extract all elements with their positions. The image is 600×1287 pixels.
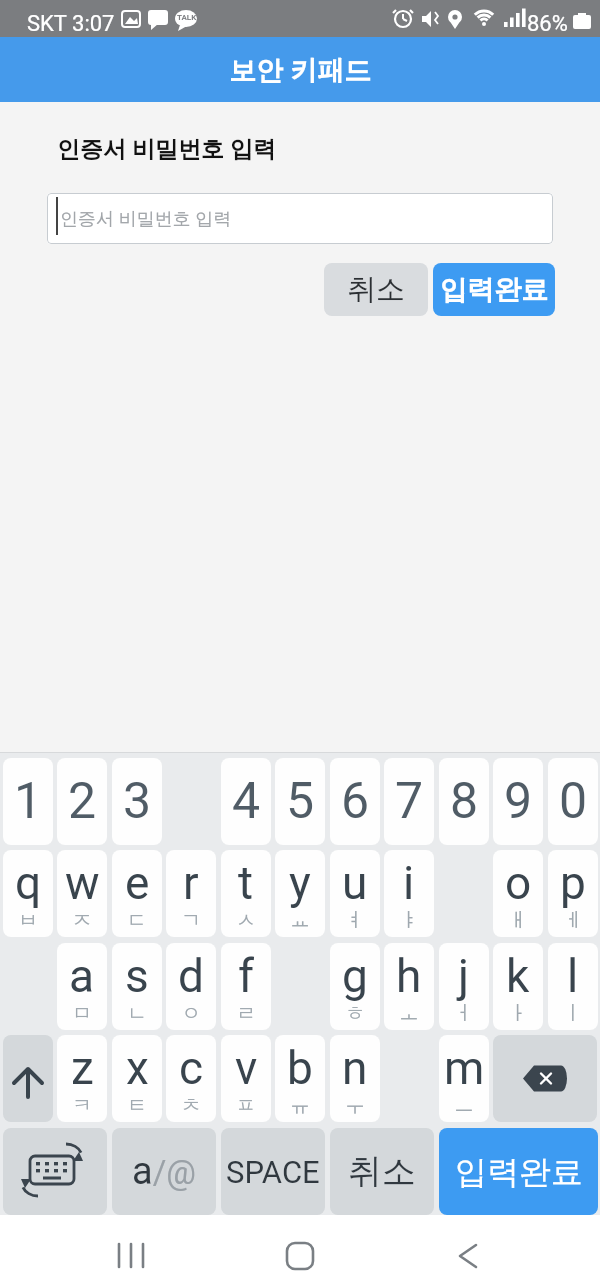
staticText: 입력완료 <box>440 273 548 307</box>
staticText: r <box>183 856 199 910</box>
button[interactable]: 7 <box>384 758 434 845</box>
button[interactable]: r <box>166 850 216 937</box>
button[interactable]: 취소 <box>324 263 428 316</box>
staticText: b <box>287 1041 313 1095</box>
staticText: 인증서 비밀번호 입력 <box>57 132 276 163</box>
button[interactable]: v <box>221 1035 271 1122</box>
button[interactable]: 입력완료 <box>433 263 555 316</box>
staticText: TALK <box>177 13 197 22</box>
button[interactable]: 3 <box>112 758 162 845</box>
button[interactable]: y <box>275 850 325 937</box>
staticText: m <box>444 1041 485 1095</box>
staticText: ㅊ <box>181 1093 201 1118</box>
staticText: ㅈ <box>72 908 92 933</box>
staticText: x <box>126 1041 149 1095</box>
staticText: ㄱ <box>181 908 201 933</box>
staticText: 인증서 비밀번호 입력 <box>60 206 232 231</box>
staticText: d <box>178 949 204 1003</box>
button[interactable]: b <box>275 1035 325 1122</box>
staticText: w <box>65 856 100 910</box>
staticText: ㅛ <box>290 908 310 933</box>
staticText: ㅁ <box>72 1001 92 1026</box>
button[interactable]: a <box>57 943 107 1030</box>
button[interactable]: o <box>493 850 543 937</box>
button[interactable]: 취소 <box>330 1128 434 1215</box>
button[interactable]: m <box>439 1035 489 1122</box>
button[interactable]: SPACE <box>221 1128 325 1215</box>
staticText: u <box>342 856 368 910</box>
staticText: q <box>15 856 42 910</box>
button[interactable]: x <box>112 1035 162 1122</box>
staticText: 6 <box>341 772 370 831</box>
staticText: ㅔ <box>563 908 583 933</box>
button[interactable]: 인증서 비밀번호 입력 <box>47 193 553 244</box>
button[interactable] <box>200 1215 400 1287</box>
button[interactable] <box>493 1035 597 1122</box>
staticText: l <box>567 949 579 1003</box>
staticText: ㅜ <box>345 1093 365 1118</box>
staticText: c <box>179 1041 204 1095</box>
staticText: 1 <box>14 772 43 831</box>
staticText: o <box>505 856 532 910</box>
button[interactable]: l <box>548 943 598 1030</box>
button[interactable]: 4 <box>221 758 271 845</box>
button[interactable]: 2 <box>57 758 107 845</box>
button[interactable]: n <box>330 1035 380 1122</box>
staticText: ㅂ <box>18 908 38 933</box>
button[interactable]: i <box>384 850 434 937</box>
staticText: ㅕ <box>345 908 365 933</box>
staticText: 0 <box>559 772 588 831</box>
staticText: k <box>506 949 530 1003</box>
button[interactable]: e <box>112 850 162 937</box>
staticText: 4 <box>232 772 261 831</box>
button[interactable]: 8 <box>439 758 489 845</box>
button[interactable]: j <box>439 943 489 1030</box>
staticText: 보안 키패드 <box>229 51 372 88</box>
button[interactable]: p <box>548 850 598 937</box>
staticText: z <box>71 1041 94 1095</box>
staticText: ㅌ <box>127 1093 147 1118</box>
button[interactable]: w <box>57 850 107 937</box>
button[interactable]: d <box>166 943 216 1030</box>
button[interactable]: k <box>493 943 543 1030</box>
staticText: 5 <box>286 772 315 831</box>
staticText: ㅗ <box>399 1001 419 1026</box>
button[interactable]: h <box>384 943 434 1030</box>
button[interactable]: a/@ <box>112 1128 216 1215</box>
staticText: 취소 <box>347 271 405 308</box>
button[interactable]: t <box>221 850 271 937</box>
button[interactable]: u <box>330 850 380 937</box>
button[interactable] <box>400 1215 600 1287</box>
staticText: 86% <box>527 11 568 37</box>
staticText: ㅣ <box>563 1001 583 1026</box>
button[interactable]: z <box>57 1035 107 1122</box>
button[interactable] <box>3 1128 107 1215</box>
staticText: s <box>125 949 149 1003</box>
button[interactable]: s <box>112 943 162 1030</box>
staticText: f <box>238 949 254 1003</box>
staticText: ㄴ <box>127 1001 147 1026</box>
staticText: t <box>238 856 254 910</box>
staticText: 3 <box>123 772 152 831</box>
button[interactable] <box>3 1035 53 1122</box>
button[interactable]: f <box>221 943 271 1030</box>
button[interactable]: 5 <box>275 758 325 845</box>
button[interactable]: 6 <box>330 758 380 845</box>
staticText: ㅍ <box>236 1093 256 1118</box>
button[interactable]: 0 <box>548 758 598 845</box>
staticText: ㅑ <box>399 908 419 933</box>
button[interactable]: 9 <box>493 758 543 845</box>
button[interactable]: 입력완료 <box>439 1128 598 1215</box>
button[interactable] <box>0 1215 200 1287</box>
staticText: ㄷ <box>127 908 147 933</box>
button[interactable]: c <box>166 1035 216 1122</box>
button[interactable]: q <box>3 850 53 937</box>
staticText: ㅅ <box>236 908 256 933</box>
staticText: 2 <box>68 772 97 831</box>
staticText: ㅎ <box>345 1001 365 1026</box>
staticText: 9 <box>504 772 533 831</box>
button[interactable]: 1 <box>3 758 53 845</box>
button[interactable]: g <box>330 943 380 1030</box>
staticText: e <box>125 856 150 910</box>
staticText: ㅇ <box>181 1001 201 1026</box>
